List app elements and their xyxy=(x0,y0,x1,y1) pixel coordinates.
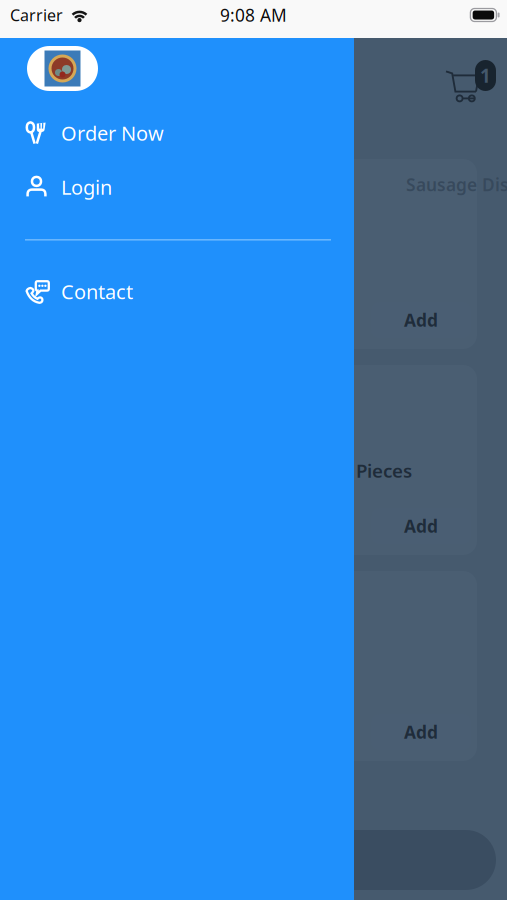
button[interactable]: Restaurant logo xyxy=(27,46,98,91)
button[interactable]: Login xyxy=(0,165,354,209)
button[interactable]: Add xyxy=(371,714,471,750)
staticText: Add xyxy=(404,720,438,743)
staticText: Login xyxy=(61,174,112,200)
button[interactable]: Contact xyxy=(0,270,354,314)
staticText: Pieces xyxy=(356,458,412,483)
staticText: 1 xyxy=(480,63,491,88)
button[interactable]: Order Now xyxy=(0,111,354,155)
button[interactable]: Add xyxy=(371,508,471,544)
staticText: Sausage Dish xyxy=(406,173,507,196)
staticText: Add xyxy=(404,308,438,331)
staticText: Carrier xyxy=(10,4,63,26)
staticText: Order Now xyxy=(61,120,164,146)
staticText: Add xyxy=(404,514,438,537)
button[interactable]: Add xyxy=(371,302,471,338)
staticText: 9:08 AM xyxy=(220,3,287,26)
staticText: Contact xyxy=(61,278,133,305)
button[interactable]: Cart xyxy=(445,60,496,104)
